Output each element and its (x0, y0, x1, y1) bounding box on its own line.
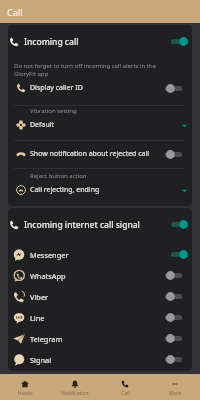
button[interactable]: Incoming call (8, 25, 192, 58)
button[interactable]: More (150, 374, 200, 400)
button[interactable]: Hotels (0, 374, 50, 400)
button[interactable]: Line (8, 307, 192, 328)
staticText: Hotels (17, 390, 33, 397)
staticText: Reject button action (30, 172, 87, 180)
button[interactable]: Notification (50, 374, 100, 400)
staticText: Incoming internet call signal (24, 219, 140, 231)
button[interactable]: Display caller ID (8, 78, 192, 98)
staticText: Notification (61, 390, 89, 397)
button[interactable]: Show notification about rejected call (8, 144, 192, 164)
button[interactable]: Viber (8, 286, 192, 307)
staticText: Line (30, 313, 45, 323)
button[interactable]: Incoming internet call signal (8, 208, 192, 241)
staticText: Signal (30, 355, 52, 365)
staticText: Messenger (30, 250, 69, 260)
button[interactable]: Call (0, 0, 200, 23)
button[interactable]: Reject button action (8, 172, 192, 200)
staticText: Call (7, 6, 23, 18)
staticText: Call (121, 390, 130, 397)
staticText: Call rejecting, ending (30, 185, 100, 195)
button[interactable]: Signal (8, 349, 192, 370)
staticText: Telegram (30, 334, 63, 344)
button[interactable]: Call (100, 374, 150, 400)
button[interactable]: Messenger (8, 244, 192, 265)
staticText: Incoming call (24, 36, 79, 48)
button[interactable]: WhatsApp (8, 265, 192, 286)
staticText: WhatsApp (30, 271, 66, 281)
button[interactable]: Vibration setting (8, 107, 192, 135)
staticText: Display caller ID (30, 83, 83, 93)
staticText: Show notification about rejected call (30, 149, 150, 159)
button[interactable]: Telegram (8, 328, 192, 349)
staticText: More (169, 390, 182, 397)
staticText: Do not forget to turn off incoming call … (14, 62, 157, 78)
staticText: Vibration setting (30, 107, 77, 115)
staticText: Viber (30, 292, 49, 302)
staticText: Default (30, 120, 55, 130)
